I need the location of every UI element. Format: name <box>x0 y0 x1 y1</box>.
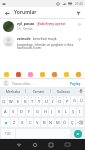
button[interactable]: Recents <box>43 139 59 150</box>
button[interactable]: 3 <box>15 96 21 105</box>
staticText: G <box>36 109 39 114</box>
button[interactable]: F <box>26 107 33 116</box>
staticText: C <box>29 120 32 125</box>
staticText: Y <box>38 99 41 104</box>
button[interactable]: C <box>27 118 33 127</box>
button[interactable]: eyl_pasaa <box>0 19 85 34</box>
button[interactable]: Ğ <box>71 96 77 105</box>
button[interactable]: clap <box>39 71 46 78</box>
staticText: J <box>51 109 53 114</box>
button[interactable]: I <box>77 107 83 116</box>
staticText: E <box>17 99 20 104</box>
button[interactable]: L <box>63 107 69 116</box>
button[interactable]: pray <box>75 71 82 78</box>
staticText: 0 <box>66 96 68 99</box>
staticText: Paylaş <box>70 81 81 86</box>
staticText: B <box>43 120 46 125</box>
staticText: I <box>52 99 54 104</box>
button[interactable]: Back <box>3 9 11 17</box>
button[interactable]: ?123 <box>1 129 15 138</box>
staticText: F <box>28 109 31 114</box>
staticText: baqardıqe, zihnide ve poqkseri cihez fac… <box>17 42 74 50</box>
staticText: 2 <box>10 96 12 99</box>
button[interactable]: Backspace <box>76 118 84 127</box>
button[interactable]: 2 <box>8 96 14 105</box>
staticText: A <box>4 109 7 114</box>
button[interactable]: Back <box>11 139 27 150</box>
button[interactable]: zeinsde <box>0 34 85 52</box>
staticText: Yorumlar <box>14 9 37 16</box>
button[interactable]: 9 <box>57 96 63 105</box>
button[interactable]: Like <box>76 36 82 42</box>
button[interactable]: Ş <box>70 107 76 116</box>
staticText: D <box>20 109 23 114</box>
staticText: Merhaba <box>6 89 20 93</box>
button[interactable]: Like <box>76 21 82 27</box>
button[interactable]: V <box>34 118 40 127</box>
staticText: Ü <box>80 98 83 103</box>
staticText: ?123 <box>5 132 11 136</box>
button[interactable]: J <box>49 107 55 116</box>
button[interactable]: Paylaş <box>69 80 82 87</box>
button[interactable]: A <box>2 107 9 116</box>
button[interactable]: K <box>56 107 62 116</box>
staticText: Ö <box>63 120 67 125</box>
button[interactable]: smile <box>3 71 10 78</box>
button[interactable]: 8 <box>50 96 56 105</box>
staticText: L <box>65 109 68 114</box>
button[interactable]: 7 <box>43 96 49 105</box>
staticText: Z <box>13 120 16 125</box>
button[interactable]: G <box>34 107 41 116</box>
staticText: P <box>66 99 69 104</box>
button[interactable]: Voice input <box>76 87 85 95</box>
button[interactable]: Send <box>71 129 84 138</box>
staticText: benzlisol muyk <box>33 36 57 41</box>
staticText: @abcfvmy aycest <box>37 21 66 26</box>
staticText: 1 <box>3 96 5 99</box>
button[interactable]: S <box>10 107 17 116</box>
button[interactable]: Tamam <box>26 87 51 95</box>
button[interactable]: cry <box>51 71 58 78</box>
button[interactable]: Filter <box>74 9 82 17</box>
button[interactable]: N <box>48 118 54 127</box>
staticText: eyl_pasaa <box>17 21 35 26</box>
staticText: Kullanıcı <box>57 89 70 93</box>
button[interactable]: Ç <box>69 118 75 127</box>
button[interactable]: Ü <box>78 96 84 105</box>
button[interactable]: Shift <box>1 118 10 127</box>
staticText: Yorum ekle... <box>12 81 69 86</box>
button[interactable]: B <box>41 118 47 127</box>
button[interactable]: wow <box>63 71 70 78</box>
button[interactable]: Kullanıcı <box>51 87 76 95</box>
staticText: Ğ <box>73 98 76 103</box>
button[interactable]: 0 <box>64 96 70 105</box>
button[interactable]: D <box>18 107 25 116</box>
staticText: H <box>44 109 47 114</box>
staticText: X <box>21 120 24 125</box>
button[interactable]: fire <box>15 71 22 78</box>
button[interactable]: Hide keyboard <box>59 139 75 150</box>
staticText: R <box>24 99 27 104</box>
staticText: S <box>12 109 15 114</box>
button[interactable]: Z <box>11 118 18 127</box>
staticText: U <box>45 99 48 104</box>
button[interactable]: H <box>42 107 48 116</box>
button[interactable]: 5 <box>29 96 35 105</box>
button[interactable]: 4 <box>22 96 28 105</box>
staticText: M <box>56 120 60 125</box>
staticText: zeinsde <box>17 36 31 41</box>
staticText: 1h Yanıtla <box>17 27 33 31</box>
button[interactable]: Merhaba <box>0 87 26 95</box>
button[interactable]: M <box>55 118 61 127</box>
staticText: 4 <box>24 96 26 99</box>
staticText: Ş <box>72 109 75 114</box>
button[interactable]: 6 <box>36 96 42 105</box>
button[interactable]: Ö <box>62 118 68 127</box>
staticText: 5 <box>31 96 33 99</box>
button[interactable]: 1 <box>1 96 7 105</box>
button[interactable]: Home <box>27 139 43 150</box>
staticText: 7 <box>45 96 47 99</box>
button[interactable]: heart <box>27 71 34 78</box>
button[interactable]: X <box>19 118 26 127</box>
